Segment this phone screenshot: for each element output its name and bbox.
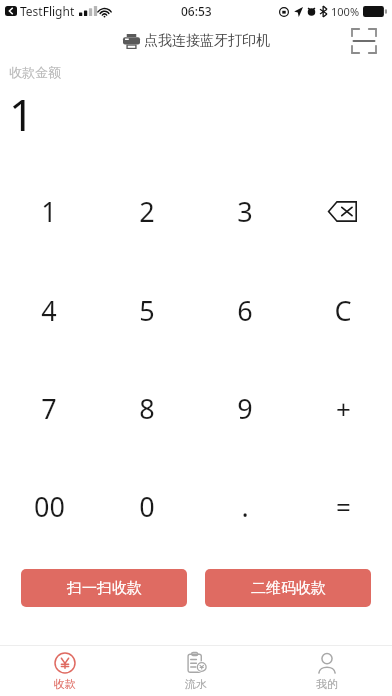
staticText: TestFlight [20, 3, 75, 19]
button[interactable]: C [294, 261, 392, 359]
button[interactable]: 5 [98, 261, 196, 359]
staticText: . [241, 488, 249, 525]
staticText: C [334, 292, 352, 329]
button[interactable]: . [196, 457, 294, 555]
staticText: 点我连接蓝牙打印机 [144, 32, 270, 50]
staticText: 二维码收款 [251, 579, 326, 598]
staticText: 7 [41, 390, 57, 427]
staticText: + [336, 391, 351, 426]
button[interactable]: 1 [0, 162, 98, 261]
button[interactable]: 00 [0, 457, 98, 555]
staticText: 收款 [54, 677, 76, 691]
button[interactable]: 点我连接蓝牙打印机 [119, 29, 274, 53]
staticText: 流水 [185, 677, 207, 691]
staticText: 扫一扫收款 [67, 579, 142, 598]
button[interactable]: 2 [98, 162, 196, 261]
staticText: 2 [139, 193, 155, 230]
button[interactable]: 4 [0, 261, 98, 359]
button[interactable]: = [294, 457, 392, 555]
staticText: 3 [237, 193, 253, 230]
staticText: 9 [237, 390, 253, 427]
button[interactable]: 0 [98, 457, 196, 555]
button[interactable]: 收款 [0, 646, 130, 696]
button[interactable]: Delete [294, 162, 392, 261]
button[interactable]: 9 [196, 359, 294, 457]
staticText: 100% [331, 4, 360, 19]
button[interactable]: + [294, 359, 392, 457]
button[interactable]: Scan [348, 25, 380, 57]
staticText: 1 [9, 84, 35, 144]
staticText: 06:53 [181, 3, 212, 19]
staticText: 收款金额 [9, 64, 61, 80]
button[interactable]: 6 [196, 261, 294, 359]
button[interactable]: 8 [98, 359, 196, 457]
button[interactable]: 流水 [130, 646, 261, 696]
staticText: 我的 [316, 677, 338, 691]
staticText: 6 [237, 292, 253, 329]
staticText: 1 [41, 193, 57, 230]
staticText: 5 [139, 292, 155, 329]
button[interactable]: 扫一扫收款 [21, 569, 187, 607]
staticText: 8 [139, 390, 155, 427]
button[interactable]: 3 [196, 162, 294, 261]
staticText: 4 [41, 292, 57, 329]
button[interactable]: 二维码收款 [205, 569, 371, 607]
staticText: 00 [34, 488, 65, 525]
button[interactable]: 我的 [261, 646, 392, 696]
staticText: 0 [139, 488, 155, 525]
staticText: = [336, 489, 351, 524]
button[interactable]: 7 [0, 359, 98, 457]
